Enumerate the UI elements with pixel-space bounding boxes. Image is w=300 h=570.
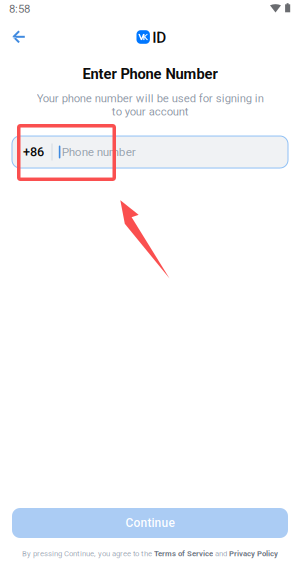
staticText: +86: [23, 145, 44, 159]
staticText: Enter Phone Number: [82, 65, 217, 83]
staticText: Phone number: [62, 145, 136, 159]
staticText: and: [213, 549, 229, 558]
staticText: Your phone number will be used for signi…: [36, 92, 263, 118]
button[interactable]: Back: [0, 0, 34, 34]
staticText: Terms of Service: [154, 549, 213, 558]
button[interactable]: Continue: [0, 0, 276, 30]
staticText: By pressing Continue, you agree to the: [22, 549, 154, 558]
staticText: Privacy Policy: [229, 549, 278, 558]
staticText: Continue: [125, 516, 174, 530]
button[interactable]: Privacy Policy: [229, 549, 278, 558]
staticText: ID: [152, 28, 166, 46]
button[interactable]: Terms of Service: [154, 549, 213, 558]
staticText: 8:58: [9, 2, 30, 16]
